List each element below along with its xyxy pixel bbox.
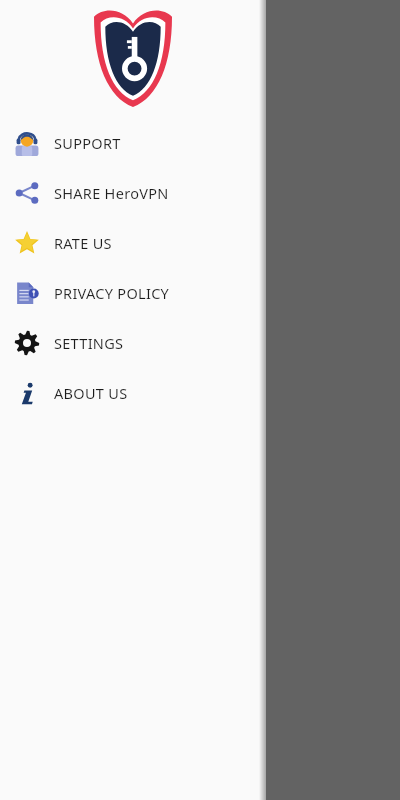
staticText: PRIVACY POLICY — [54, 283, 170, 303]
staticText: SETTINGS — [54, 333, 124, 353]
button[interactable]: PRIVACY POLICY — [0, 268, 266, 318]
staticText: SUPPORT — [54, 133, 121, 153]
button[interactable]: BEST — [0, 8, 115, 52]
staticText: ABOUT US — [54, 383, 128, 403]
button[interactable]: ABOUT US — [0, 368, 266, 418]
button[interactable]: RATE US — [0, 218, 266, 268]
staticText: SHARE HeroVPN — [54, 183, 169, 203]
staticText: RATE US — [54, 233, 112, 253]
button[interactable]: SHARE HeroVPN — [0, 168, 266, 218]
button[interactable]: SUPPORT — [0, 118, 266, 168]
button[interactable]: SETTINGS — [0, 318, 266, 368]
